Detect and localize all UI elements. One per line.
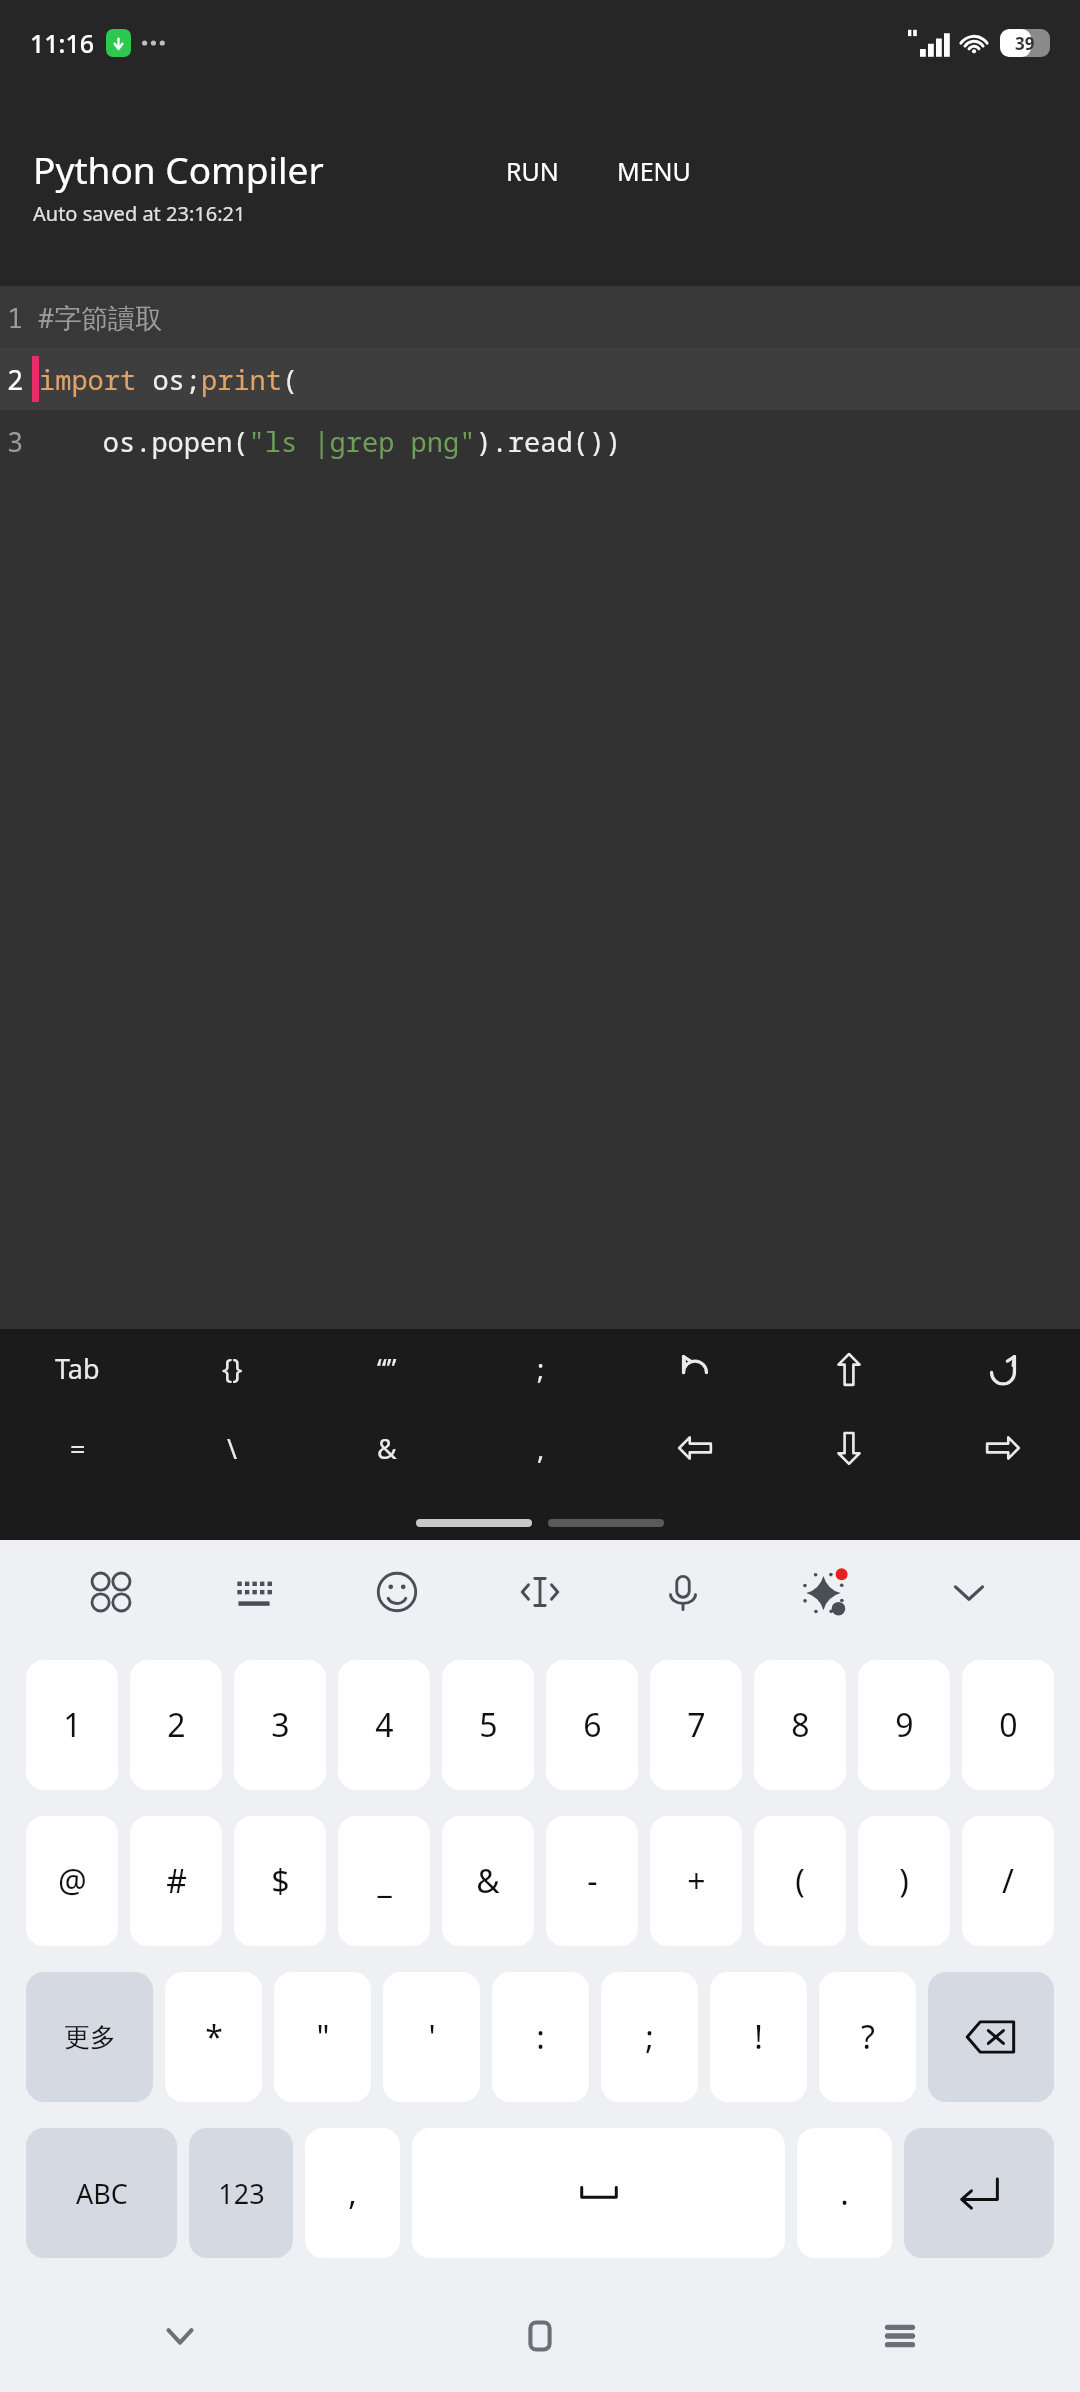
staticText: ! <box>754 2015 763 2059</box>
button[interactable]: RUN <box>490 144 575 198</box>
button[interactable]: @ <box>26 1816 118 1946</box>
button[interactable]: = <box>0 1408 155 1488</box>
button[interactable]: up <box>772 1329 926 1408</box>
staticText: 3 <box>7 423 24 460</box>
button[interactable]: Tab <box>0 1329 155 1408</box>
button[interactable]: ; <box>601 1972 698 2102</box>
button[interactable]: + <box>650 1816 742 1946</box>
staticText: import os;print( <box>39 361 299 398</box>
staticText: Auto saved at 23:16:21 <box>33 200 246 227</box>
button[interactable]: MENU <box>601 144 707 198</box>
button[interactable]: 更多 <box>26 1972 153 2102</box>
button[interactable]: - <box>546 1816 638 1946</box>
button[interactable]: {} <box>155 1329 310 1408</box>
button[interactable]: $ <box>234 1816 326 1946</box>
button[interactable]: ; <box>464 1329 618 1408</box>
button[interactable]: ! <box>710 1972 807 2102</box>
staticText: . <box>840 2171 849 2215</box>
button[interactable]: right <box>926 1408 1080 1488</box>
button[interactable]: 0 <box>962 1660 1054 1790</box>
button[interactable]: : <box>492 1972 589 2102</box>
button[interactable]: 9 <box>858 1660 950 1790</box>
button[interactable]: Back <box>0 2280 360 2392</box>
button[interactable]: ABC <box>26 2128 177 2258</box>
staticText: ( <box>795 1859 805 1903</box>
staticText: $ <box>271 1859 290 1903</box>
staticText: 2 <box>7 361 24 398</box>
button[interactable]: Text editing <box>468 1540 611 1644</box>
staticText: 1 <box>7 299 24 336</box>
staticText: \ <box>227 1430 238 1467</box>
button[interactable]: Space <box>412 2128 785 2258</box>
button[interactable]: Recents <box>720 2280 1080 2392</box>
button[interactable]: / <box>962 1816 1054 1946</box>
button[interactable]: ' <box>383 1972 480 2102</box>
button[interactable]: , <box>464 1408 618 1488</box>
button[interactable]: left <box>618 1408 772 1488</box>
button[interactable]: “” <box>310 1329 464 1408</box>
staticText: * <box>205 2015 223 2059</box>
button[interactable]: 3 <box>234 1660 326 1790</box>
button[interactable]: 2 <box>130 1660 222 1790</box>
staticText: ; <box>645 2015 654 2059</box>
button[interactable]: ? <box>819 1972 916 2102</box>
staticText: ) <box>899 1859 909 1903</box>
button[interactable]: 4 <box>338 1660 430 1790</box>
staticText: Tab <box>55 1350 100 1387</box>
staticText: RUN <box>506 154 559 188</box>
button[interactable]: Emoji <box>325 1540 468 1644</box>
staticText: # <box>166 1859 187 1903</box>
button[interactable]: . <box>797 2128 892 2258</box>
button[interactable]: undo <box>618 1329 772 1408</box>
button[interactable]: 8 <box>754 1660 846 1790</box>
staticText: 0 <box>999 1703 1018 1747</box>
staticText: 6 <box>583 1703 602 1747</box>
staticText: 更多 <box>64 2021 116 2054</box>
button[interactable]: 1 <box>26 1660 118 1790</box>
button[interactable]: 5 <box>442 1660 534 1790</box>
button[interactable]: # <box>130 1816 222 1946</box>
staticText: _ <box>377 1859 392 1903</box>
button[interactable]: * <box>165 1972 262 2102</box>
staticText: / <box>1002 1859 1014 1903</box>
staticText: 8 <box>791 1703 810 1747</box>
button[interactable]: Backspace <box>928 1972 1054 2102</box>
button[interactable]: 7 <box>650 1660 742 1790</box>
button[interactable]: \ <box>155 1408 310 1488</box>
button[interactable]: AI assistant <box>754 1540 897 1644</box>
staticText: , <box>537 1430 545 1467</box>
staticText: 2 <box>167 1703 186 1747</box>
staticText: MENU <box>617 154 691 188</box>
button[interactable]: Hide keyboard <box>897 1540 1040 1644</box>
button[interactable]: down <box>772 1408 926 1488</box>
staticText: @ <box>58 1859 87 1903</box>
staticText: 9 <box>895 1703 914 1747</box>
button[interactable]: redo <box>926 1329 1080 1408</box>
button[interactable]: & <box>442 1816 534 1946</box>
staticText: ' <box>428 2015 436 2059</box>
staticText: = <box>70 1430 86 1467</box>
staticText: 123 <box>218 2175 265 2212</box>
staticText: 3 <box>271 1703 290 1747</box>
button[interactable]: Voice input <box>611 1540 754 1644</box>
button[interactable]: ( <box>754 1816 846 1946</box>
button[interactable]: Home <box>360 2280 720 2392</box>
staticText: & <box>476 1859 500 1903</box>
button[interactable]: , <box>305 2128 400 2258</box>
staticText: - <box>587 1859 598 1903</box>
staticText: #字節讀取 <box>38 299 163 336</box>
staticText: 39 <box>1015 32 1035 55</box>
button[interactable]: " <box>274 1972 371 2102</box>
staticText: & <box>377 1430 397 1467</box>
button[interactable]: & <box>310 1408 464 1488</box>
button[interactable]: Keyboard layout <box>182 1540 325 1644</box>
button[interactable]: _ <box>338 1816 430 1946</box>
staticText: " <box>316 2015 330 2059</box>
button[interactable]: Enter <box>904 2128 1054 2258</box>
button[interactable]: ) <box>858 1816 950 1946</box>
button[interactable]: 123 <box>189 2128 293 2258</box>
staticText: : <box>536 2015 545 2059</box>
staticText: ; <box>537 1350 545 1387</box>
button[interactable]: 6 <box>546 1660 638 1790</box>
button[interactable]: Clipboard <box>40 1540 182 1644</box>
